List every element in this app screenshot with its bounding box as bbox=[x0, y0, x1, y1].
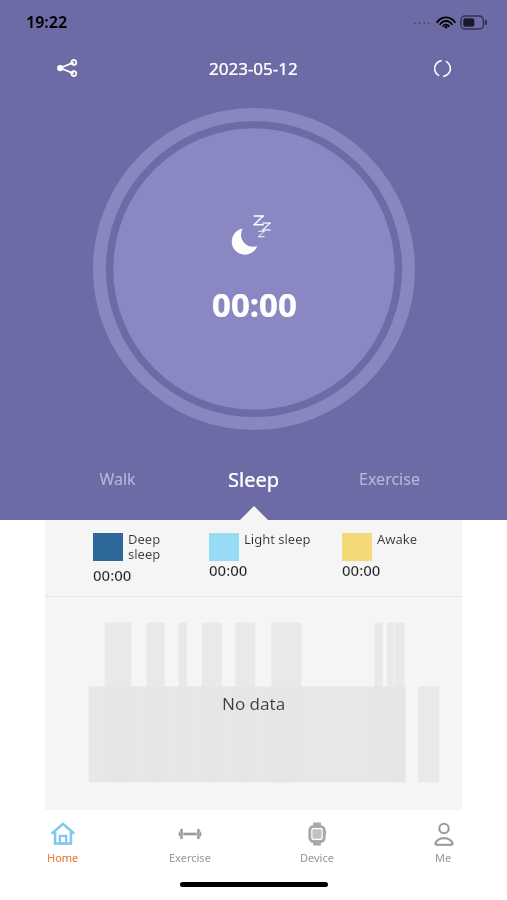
button[interactable]: Device bbox=[253, 818, 380, 865]
staticText: Awake bbox=[377, 530, 418, 548]
staticText: 2023-05-12 bbox=[209, 57, 298, 80]
staticText: Home bbox=[47, 850, 79, 865]
staticText: Me bbox=[435, 850, 452, 865]
staticText: 00:00 bbox=[342, 560, 381, 580]
staticText: Sleep bbox=[228, 466, 279, 493]
staticText: Device bbox=[300, 850, 334, 865]
button[interactable]: Share bbox=[50, 51, 84, 85]
staticText: 00:00 bbox=[93, 565, 132, 585]
staticText: Exercise bbox=[169, 850, 211, 865]
staticText: Exercise bbox=[359, 468, 420, 490]
staticText: Deep sleep bbox=[128, 530, 161, 563]
button[interactable]: Exercise bbox=[126, 818, 253, 865]
staticText: 00:00 bbox=[212, 282, 297, 327]
staticText: 19:22 bbox=[26, 11, 68, 33]
staticText: Light sleep bbox=[244, 530, 311, 548]
button[interactable]: Home bbox=[0, 818, 126, 865]
button[interactable]: Me bbox=[380, 818, 507, 865]
button[interactable]: Walk bbox=[50, 468, 185, 490]
staticText: No data bbox=[222, 692, 286, 715]
button[interactable]: Exercise bbox=[321, 468, 457, 490]
button[interactable]: Refresh bbox=[425, 51, 459, 85]
button[interactable]: Sleep bbox=[185, 466, 321, 493]
staticText: Walk bbox=[99, 468, 136, 490]
staticText: 00:00 bbox=[209, 560, 248, 580]
